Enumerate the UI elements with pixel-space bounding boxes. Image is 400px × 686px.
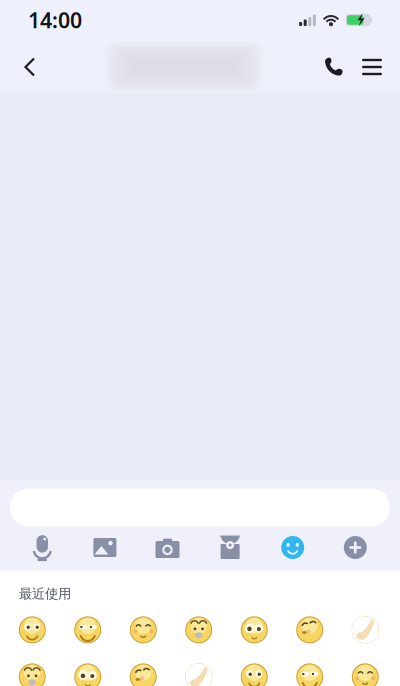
- button[interactable]: Emoji: [4, 610, 60, 650]
- button[interactable]: Emoji: [261, 530, 324, 564]
- button[interactable]: Back: [8, 42, 52, 92]
- button[interactable]: Camera: [136, 530, 199, 564]
- button[interactable]: More: [324, 530, 387, 564]
- button[interactable]: Call: [316, 42, 352, 92]
- button[interactable]: Emoji: [282, 610, 337, 650]
- button[interactable]: Voice message: [11, 530, 74, 564]
- staticText: 最近使用: [19, 585, 71, 602]
- button[interactable]: Emoji: [337, 657, 393, 686]
- button[interactable]: Emoji: [115, 657, 171, 686]
- button[interactable]: Photos: [74, 530, 136, 564]
- button[interactable]: Emoji: [171, 610, 226, 650]
- button[interactable]: Emoji: [60, 657, 115, 686]
- button[interactable]: Emoji: [226, 657, 282, 686]
- button[interactable]: Emoji: [60, 610, 115, 650]
- button[interactable]: Emoji: [4, 657, 60, 686]
- staticText: 14:00: [28, 6, 82, 34]
- button[interactable]: Emoji: [282, 657, 337, 686]
- button[interactable]: Emoji: [115, 610, 171, 650]
- button[interactable]: Emoji: [337, 610, 393, 650]
- button[interactable]: Red packet: [199, 530, 261, 564]
- button[interactable]: Emoji: [226, 610, 282, 650]
- button[interactable]: Menu: [352, 42, 392, 92]
- button[interactable]: Emoji: [171, 657, 226, 686]
